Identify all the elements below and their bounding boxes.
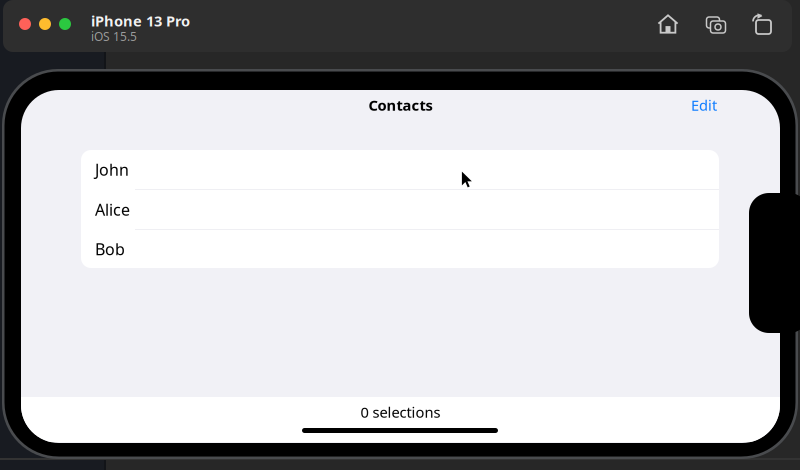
staticText: iOS 15.5 [91,28,137,44]
staticText: Bob [95,238,125,260]
button[interactable]: Minimize [39,18,51,30]
button[interactable]: Close [19,18,31,30]
button[interactable]: Edit [674,93,734,117]
button[interactable]: Home [651,7,685,41]
staticText: John [95,159,129,180]
staticText: Contacts [368,95,432,115]
staticText: 0 selections [360,402,440,422]
staticText: Edit [691,95,717,115]
button[interactable]: Zoom [59,18,71,30]
button[interactable]: John [81,150,719,190]
staticText: iPhone 13 Pro [91,11,190,30]
button[interactable]: Screenshot [697,6,731,40]
button[interactable]: Alice [81,190,719,230]
button[interactable]: Rotate [743,4,777,38]
button[interactable]: Bob [81,230,719,268]
staticText: Alice [95,199,130,220]
